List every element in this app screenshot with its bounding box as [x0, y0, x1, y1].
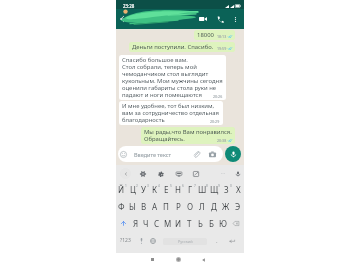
- button[interactable]: Backspace: [228, 215, 244, 232]
- button[interactable]: Введите текст: [118, 146, 223, 162]
- staticText: Т: [187, 218, 192, 229]
- button[interactable]: Settings: [138, 169, 147, 178]
- button[interactable]: More options: [229, 9, 241, 29]
- button[interactable]: И: [173, 215, 184, 232]
- button[interactable]: Е: [160, 181, 172, 198]
- button[interactable]: Clipboard: [174, 169, 183, 178]
- staticText: К: [152, 184, 157, 195]
- button[interactable]: Back: [199, 255, 208, 264]
- staticText: П: [163, 201, 169, 212]
- button[interactable]: Ю: [217, 215, 228, 232]
- staticText: 7: [194, 184, 196, 188]
- button[interactable]: В: [138, 198, 149, 215]
- button[interactable]: Й: [116, 181, 127, 198]
- staticText: 20:26: [213, 94, 223, 99]
- button[interactable]: Voice message: [225, 146, 241, 162]
- button[interactable]: Ц: [127, 181, 138, 198]
- button[interactable]: Comma: [135, 232, 147, 249]
- button[interactable]: Emoji: [147, 232, 159, 249]
- button[interactable]: Я: [131, 215, 141, 232]
- staticText: Спасибо большое вам. Стол собрали, тепер…: [122, 56, 223, 99]
- button[interactable]: М: [162, 215, 173, 232]
- button[interactable]: Ф: [116, 198, 127, 215]
- staticText: И мне удобнее, тот был низким, вам за со…: [122, 102, 220, 124]
- staticText: М: [164, 218, 172, 229]
- button[interactable]: Т: [184, 215, 195, 232]
- button[interactable]: Translate: [191, 169, 200, 178]
- button[interactable]: Русский: [163, 238, 207, 245]
- button[interactable]: П: [160, 198, 172, 215]
- button[interactable]: А: [149, 198, 160, 215]
- staticText: У: [141, 184, 146, 195]
- staticText: Л: [199, 201, 205, 212]
- button[interactable]: Э: [232, 198, 244, 215]
- staticText: 8: [206, 184, 208, 188]
- button[interactable]: Г: [184, 181, 196, 198]
- button[interactable]: З: [220, 181, 232, 198]
- staticText: 9: [218, 184, 220, 188]
- staticText: Ь: [198, 218, 203, 229]
- staticText: Ы: [129, 201, 136, 212]
- button[interactable]: К: [149, 181, 160, 198]
- staticText: 1: [125, 184, 127, 188]
- staticText: Ю: [219, 218, 227, 229]
- button[interactable]: Ь: [195, 215, 206, 232]
- button[interactable]: Д: [208, 198, 220, 215]
- button[interactable]: Back: [117, 9, 131, 29]
- button[interactable]: У: [138, 181, 149, 198]
- button[interactable]: Collapse toolbar: [120, 168, 131, 179]
- button[interactable]: 18000: [194, 30, 235, 40]
- button[interactable]: Video call: [196, 9, 210, 29]
- button[interactable]: Stickers: [156, 169, 165, 178]
- staticText: Д: [211, 201, 217, 212]
- button[interactable]: Ш: [196, 181, 208, 198]
- button[interactable]: ?123: [117, 232, 133, 249]
- staticText: ?123: [120, 237, 131, 244]
- staticText: В: [141, 201, 147, 212]
- staticText: О: [187, 201, 194, 212]
- staticText: Ш: [198, 184, 207, 195]
- staticText: Х: [236, 184, 241, 195]
- staticText: Русский: [178, 239, 193, 244]
- button[interactable]: Attach: [193, 151, 200, 158]
- button[interactable]: Н: [172, 181, 184, 198]
- button[interactable]: Recent apps: [148, 255, 157, 264]
- staticText: 18:13: [217, 34, 227, 39]
- staticText: 23:28: [123, 3, 135, 9]
- staticText: 3: [147, 184, 149, 188]
- button[interactable]: Ч: [141, 215, 151, 232]
- staticText: Я: [133, 218, 139, 229]
- button[interactable]: Ы: [127, 198, 138, 215]
- staticText: С: [154, 218, 160, 229]
- button[interactable]: Мы рады,что Вам понравился. Обращайтесь.: [141, 127, 235, 144]
- staticText: Г: [188, 184, 193, 195]
- staticText: З: [224, 184, 229, 195]
- button[interactable]: Call: [213, 9, 227, 29]
- button[interactable]: Ж: [220, 198, 232, 215]
- staticText: 19:59: [217, 46, 227, 51]
- button[interactable]: Л: [196, 198, 208, 215]
- button[interactable]: Щ: [208, 181, 220, 198]
- button[interactable]: Camera: [209, 151, 216, 158]
- staticText: Р: [176, 201, 181, 212]
- button[interactable]: Б: [206, 215, 217, 232]
- staticText: Деньги поступили. Спасибо.: [132, 43, 214, 51]
- staticText: Мы рады,что Вам понравился. Обращайтесь.: [144, 128, 232, 143]
- button[interactable]: С: [151, 215, 162, 232]
- button[interactable]: Деньги поступили. Спасибо.: [129, 42, 235, 52]
- staticText: 2: [136, 184, 138, 188]
- button[interactable]: И мне удобнее, тот был низким, вам за со…: [119, 101, 223, 125]
- button[interactable]: Voice input: [233, 169, 242, 178]
- button[interactable]: О: [184, 198, 196, 215]
- button[interactable]: Х: [232, 181, 244, 198]
- button[interactable]: Спасибо большое вам. Стол собрали, тепер…: [119, 55, 226, 100]
- button[interactable]: Home: [174, 255, 183, 264]
- staticText: Е: [164, 184, 169, 195]
- staticText: Б: [209, 218, 214, 229]
- button[interactable]: Enter: [225, 232, 239, 249]
- button[interactable]: Р: [172, 198, 184, 215]
- button[interactable]: Shift: [116, 215, 131, 232]
- staticText: Ф: [118, 201, 125, 212]
- button[interactable]: More: [218, 169, 227, 178]
